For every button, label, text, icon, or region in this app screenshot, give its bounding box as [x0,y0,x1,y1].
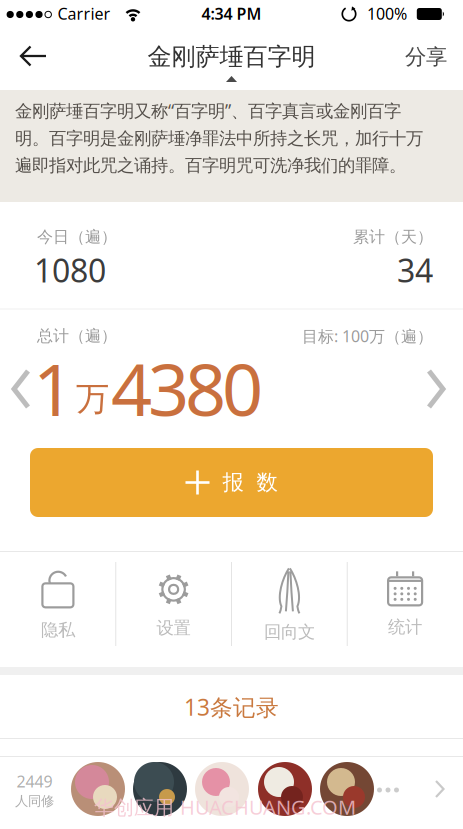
staticText: 华创应用 HUACHUANG.COM [94,794,356,820]
staticText: 4380 [111,340,263,436]
staticText: 34 [397,249,433,291]
staticText: 设置 [157,617,191,639]
button[interactable]: 下一个咒语 [420,363,452,415]
button[interactable]: 统计 [348,549,462,659]
staticText: 统计 [388,616,422,638]
staticText: 4:34 PM [201,3,261,24]
button[interactable]: 金刚萨埵百字明 [147,42,315,82]
staticText: 金刚萨埵百字明又称“百字明”、百字真言或金刚百字 [15,99,401,122]
staticText: 分享 [405,44,447,70]
button[interactable]: 13条记录 [0,677,463,737]
staticText: 总计（遍） [37,326,117,346]
staticText: Carrier [57,3,110,24]
staticText: 13条记录 [184,692,279,722]
staticText: 金刚萨埵百字明 [147,42,315,71]
staticText: 报 [222,469,243,496]
staticText: 明。百字明是金刚萨埵净罪法中所持之长咒，加行十万 [15,128,423,149]
button[interactable]: 报 [30,448,433,517]
button[interactable]: 设置 [117,549,231,659]
staticText: 万 [76,378,109,419]
staticText: 100% [367,3,407,24]
staticText: 目标: 100万（遍） [302,325,433,347]
staticText: 1 [33,340,74,436]
staticText: 2449 [16,771,52,792]
staticText: 今日（遍） [37,227,117,247]
staticText: 人同修 [15,793,54,809]
staticText: 数 [256,469,277,496]
button[interactable]: 隐私 [1,549,115,659]
staticText: 累计（天） [353,227,433,247]
button[interactable]: 2449 人同修 [0,756,463,828]
button[interactable]: 返回 [8,35,58,76]
staticText: 隐私 [41,619,75,641]
staticText: 遍即指对此咒之诵持。百字明咒可洗净我们的罪障。 [15,155,406,176]
button[interactable]: 回向文 [232,549,346,659]
staticText: 回向文 [264,621,315,643]
button[interactable]: 分享 [397,36,455,78]
staticText: 1080 [34,249,106,291]
button[interactable]: 上一个咒语 [5,363,37,415]
